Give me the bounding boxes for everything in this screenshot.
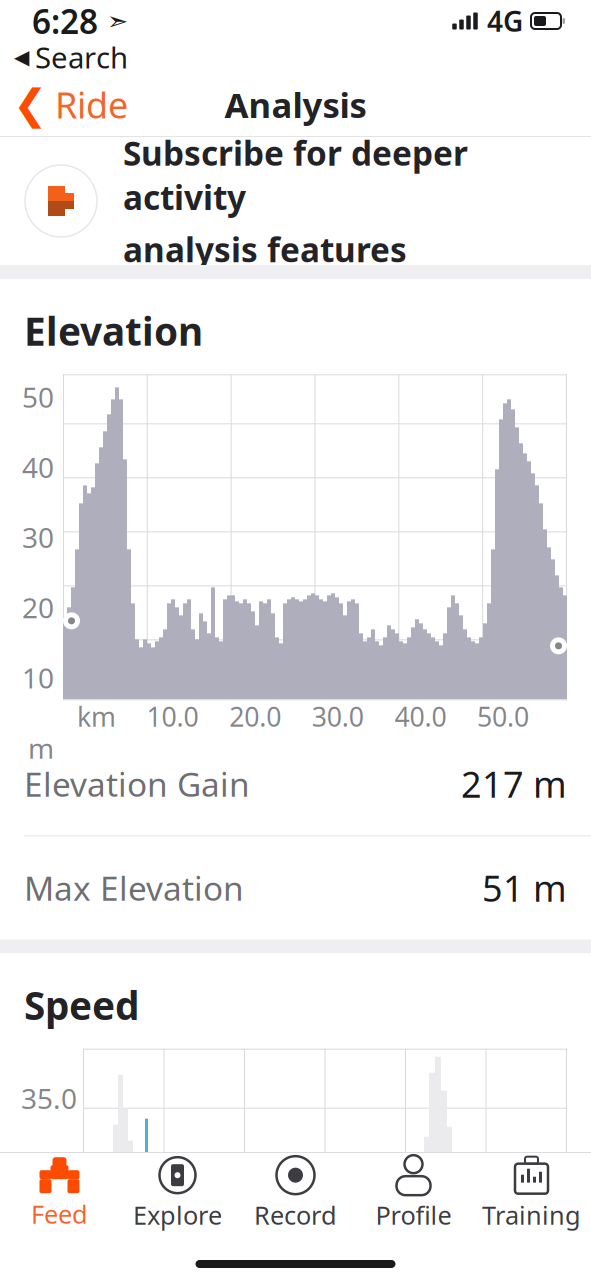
- staticText: 50.0: [477, 699, 529, 734]
- staticText: 20.0: [229, 699, 281, 734]
- button[interactable]: Subscribe for deeper activity: [0, 137, 591, 265]
- staticText: Subscribe for deeper activity: [123, 131, 468, 219]
- button[interactable]: Explore: [118, 1153, 236, 1235]
- staticText: Search: [35, 37, 128, 76]
- staticText: ◀: [14, 46, 29, 68]
- staticText: 30.0: [21, 1155, 77, 1192]
- staticText: Feed: [31, 1197, 88, 1231]
- staticText: Record: [254, 1198, 337, 1232]
- staticText: Elevation Gain: [24, 762, 250, 806]
- staticText: Ride: [55, 81, 128, 128]
- staticText: 30.0: [312, 699, 364, 734]
- staticText: m: [28, 729, 54, 766]
- staticText: 10.0: [147, 699, 199, 734]
- staticText: Elevation: [24, 305, 203, 356]
- staticText: 4G: [487, 2, 523, 40]
- button[interactable]: Training: [472, 1153, 590, 1235]
- staticText: 6:28: [32, 0, 98, 43]
- staticText: Explore: [133, 1198, 222, 1232]
- staticText: km: [77, 699, 116, 734]
- staticText: 35.0: [21, 1079, 77, 1117]
- button[interactable]: Profile: [354, 1153, 472, 1235]
- staticText: 217 m: [461, 760, 567, 808]
- button[interactable]: Record: [236, 1153, 354, 1235]
- staticText: Analysis: [224, 81, 366, 127]
- staticText: 20: [22, 589, 54, 626]
- staticText: 40: [22, 448, 54, 486]
- staticText: analysis features: [123, 227, 407, 271]
- staticText: 50: [22, 378, 54, 415]
- staticText: 30: [22, 519, 54, 556]
- staticText: 51 m: [482, 864, 567, 912]
- staticText: ➣: [98, 7, 128, 35]
- staticText: Training: [482, 1198, 581, 1232]
- staticText: ❮: [13, 81, 48, 128]
- button[interactable]: ❮: [0, 73, 140, 136]
- staticText: Max Elevation: [24, 866, 244, 910]
- staticText: Speed: [24, 979, 139, 1031]
- staticText: Profile: [375, 1198, 451, 1232]
- staticText: 10: [22, 659, 54, 696]
- button[interactable]: Feed: [0, 1153, 118, 1235]
- staticText: 40.0: [394, 699, 446, 734]
